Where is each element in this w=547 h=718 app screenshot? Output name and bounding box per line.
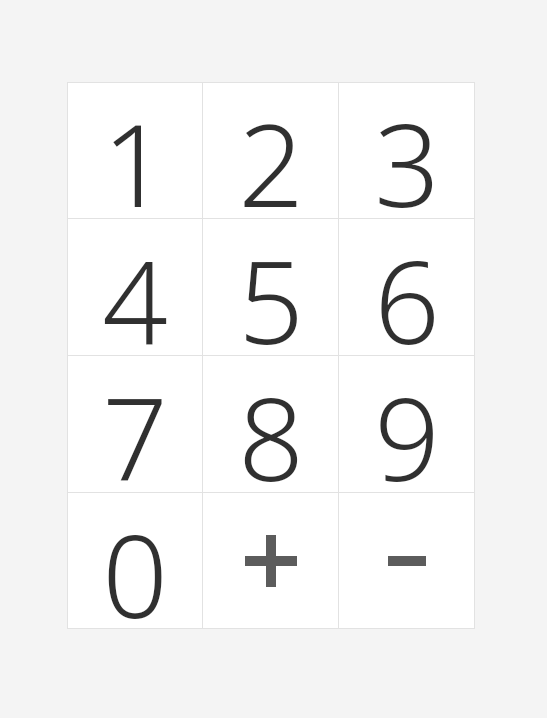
button[interactable]: 3: [339, 82, 475, 219]
button[interactable]: 5: [203, 219, 339, 356]
button[interactable]: 4: [67, 219, 203, 356]
staticText: 2: [238, 84, 304, 221]
staticText: 1: [102, 84, 168, 221]
staticText: 8: [238, 358, 304, 495]
staticText: 5: [238, 221, 304, 358]
button[interactable]: 1: [67, 82, 203, 219]
button[interactable]: 6: [339, 219, 475, 356]
staticText: 7: [102, 358, 168, 495]
button[interactable]: 9: [339, 356, 475, 493]
button[interactable]: Minus: [339, 493, 475, 629]
button[interactable]: 8: [203, 356, 339, 493]
button[interactable]: 0: [67, 493, 203, 629]
staticText: 4: [102, 221, 168, 358]
staticText: 6: [374, 221, 440, 358]
button[interactable]: 2: [203, 82, 339, 219]
staticText: 9: [374, 358, 440, 495]
staticText: 0: [102, 495, 168, 629]
staticText: 3: [374, 84, 440, 221]
button[interactable]: Plus: [203, 493, 339, 629]
button[interactable]: 7: [67, 356, 203, 493]
